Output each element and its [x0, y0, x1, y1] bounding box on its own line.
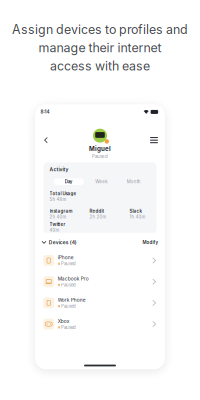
staticText: Paused — [61, 304, 76, 309]
staticText: 40m — [49, 228, 59, 233]
staticText: Paused — [61, 282, 76, 288]
staticText: Twitter — [49, 222, 65, 227]
staticText: Month — [127, 179, 141, 184]
button[interactable]: iPhone — [35, 250, 165, 271]
staticText: Miguel — [89, 145, 111, 152]
staticText: Paused — [92, 154, 108, 159]
button[interactable]: Modify — [142, 240, 158, 245]
staticText: Slack — [129, 209, 142, 214]
staticText: access with ease — [50, 58, 150, 73]
staticText: Xbox — [58, 318, 70, 324]
staticText: iPhone — [58, 255, 74, 260]
staticText: Work Phone — [58, 297, 86, 303]
button[interactable]: Month — [117, 178, 150, 185]
staticText: Activity — [49, 166, 68, 172]
button[interactable]: Menu — [148, 135, 159, 146]
button[interactable]: Xbox — [35, 313, 165, 335]
button[interactable]: Work Phone — [35, 292, 165, 313]
staticText: 1h 40m — [129, 214, 145, 220]
staticText: Reddit — [89, 209, 104, 214]
staticText: Total Usage — [49, 191, 76, 196]
staticText: 8:14 — [40, 109, 49, 115]
staticText: Instagram — [49, 209, 72, 214]
staticText: Day — [65, 179, 73, 184]
staticText: 5h 46m — [49, 197, 66, 202]
staticText: Paused — [61, 325, 76, 330]
button[interactable]: Back — [40, 135, 51, 146]
button[interactable]: Day — [52, 178, 85, 185]
staticText: Macbook Pro — [58, 276, 89, 282]
staticText: Week — [95, 179, 107, 184]
staticText: Modify — [142, 240, 158, 245]
staticText: Devices (4) — [49, 239, 77, 245]
button[interactable]: Week — [85, 178, 117, 185]
button[interactable]: Macbook Pro — [35, 271, 165, 292]
staticText: Paused — [61, 261, 76, 266]
staticText: manage their internet — [38, 40, 161, 55]
staticText: 2h 40m — [49, 214, 66, 220]
staticText: 2h 20m — [89, 214, 106, 220]
staticText: Assign devices to profiles and — [12, 22, 188, 37]
